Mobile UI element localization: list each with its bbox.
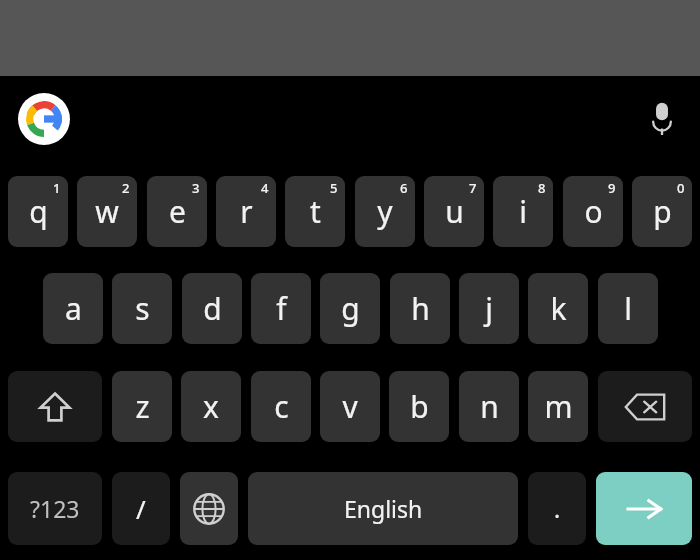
staticText: 4: [261, 179, 269, 197]
button[interactable]: x: [181, 371, 241, 442]
staticText: 7: [469, 179, 477, 197]
button[interactable]: p: [632, 176, 692, 247]
button[interactable]: Change language: [180, 472, 238, 545]
staticText: z: [135, 386, 150, 427]
staticText: n: [480, 386, 499, 427]
staticText: i: [519, 191, 527, 232]
staticText: f: [276, 288, 287, 329]
staticText: v: [342, 386, 358, 427]
staticText: d: [203, 288, 222, 329]
button[interactable]: i: [493, 176, 553, 247]
button[interactable]: m: [528, 371, 588, 442]
button[interactable]: r: [216, 176, 276, 247]
staticText: 2: [122, 179, 130, 197]
staticText: a: [65, 288, 82, 329]
button[interactable]: j: [459, 273, 519, 344]
staticText: 5: [330, 179, 338, 197]
staticText: .: [554, 493, 561, 524]
button[interactable]: w: [77, 176, 137, 247]
staticText: u: [445, 191, 464, 232]
button[interactable]: Voice input: [640, 96, 684, 142]
staticText: s: [135, 288, 150, 329]
staticText: e: [169, 191, 186, 232]
staticText: r: [240, 191, 253, 232]
button[interactable]: Google search: [18, 93, 70, 145]
button[interactable]: k: [528, 273, 588, 344]
button[interactable]: English: [248, 472, 518, 545]
staticText: 1: [53, 179, 61, 197]
button[interactable]: h: [390, 273, 450, 344]
button[interactable]: l: [598, 273, 658, 344]
staticText: ?123: [30, 493, 80, 524]
staticText: English: [344, 493, 423, 524]
staticText: k: [550, 288, 567, 329]
button[interactable]: n: [459, 371, 519, 442]
staticText: 6: [400, 179, 408, 197]
staticText: g: [341, 288, 360, 329]
button[interactable]: Backspace: [598, 371, 692, 442]
staticText: 3: [192, 179, 200, 197]
button[interactable]: a: [43, 273, 103, 344]
staticText: l: [624, 288, 632, 329]
button[interactable]: ?123: [8, 472, 102, 545]
staticText: /: [136, 491, 146, 526]
button[interactable]: q: [8, 176, 68, 247]
staticText: b: [410, 386, 429, 427]
staticText: o: [584, 191, 603, 232]
button[interactable]: d: [182, 273, 242, 344]
staticText: p: [653, 191, 672, 232]
button[interactable]: f: [251, 273, 311, 344]
button[interactable]: e: [147, 176, 207, 247]
staticText: 9: [608, 179, 616, 197]
button[interactable]: z: [112, 371, 172, 442]
button[interactable]: c: [251, 371, 311, 442]
button[interactable]: g: [320, 273, 380, 344]
button[interactable]: s: [112, 273, 172, 344]
button[interactable]: t: [285, 176, 345, 247]
staticText: 8: [538, 179, 546, 197]
staticText: t: [310, 191, 321, 232]
staticText: c: [274, 386, 289, 427]
button[interactable]: .: [528, 472, 586, 545]
staticText: w: [95, 191, 119, 232]
button[interactable]: o: [563, 176, 623, 247]
staticText: j: [485, 288, 493, 329]
staticText: x: [203, 386, 219, 427]
button[interactable]: v: [320, 371, 380, 442]
button[interactable]: Shift: [8, 371, 102, 442]
staticText: 0: [677, 179, 685, 197]
staticText: m: [544, 386, 573, 427]
staticText: q: [29, 191, 48, 232]
staticText: y: [377, 191, 393, 232]
button[interactable]: /: [112, 472, 170, 545]
button[interactable]: b: [389, 371, 449, 442]
button[interactable]: u: [424, 176, 484, 247]
button[interactable]: y: [355, 176, 415, 247]
staticText: h: [411, 288, 430, 329]
button[interactable]: Enter: [596, 472, 692, 545]
